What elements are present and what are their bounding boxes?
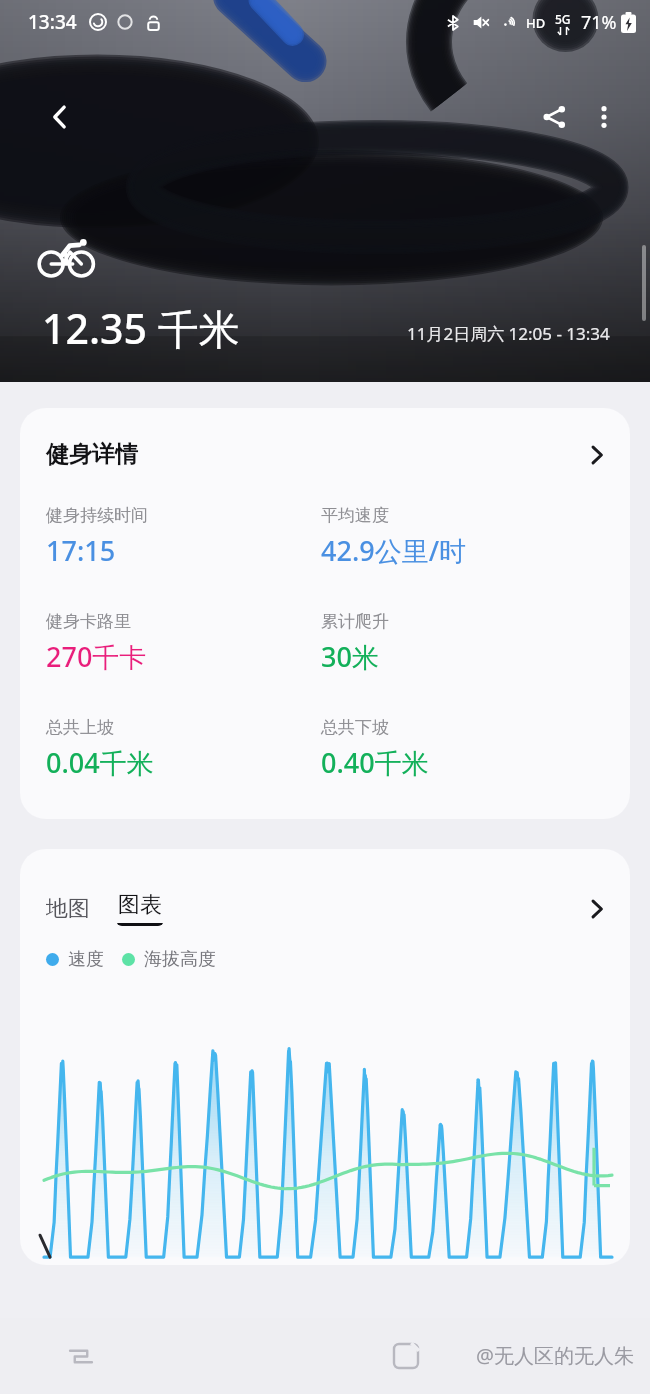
staticText: 健身持续时间 xyxy=(46,505,148,526)
staticText: 42.9公里/时 xyxy=(321,532,467,569)
staticText: 速度 xyxy=(68,948,104,971)
staticText: 总共上坡 xyxy=(46,717,114,738)
staticText: 17:15 xyxy=(46,532,116,569)
staticText: 健身详情 xyxy=(46,440,138,469)
staticText: @无人区的无人朱 xyxy=(476,1342,634,1369)
button[interactable]: Share xyxy=(530,93,578,141)
button[interactable]: Recents xyxy=(0,1318,162,1394)
staticText: 总共下坡 xyxy=(321,717,389,738)
staticText: 0.04千米 xyxy=(46,744,154,781)
button[interactable]: Back xyxy=(36,93,84,141)
button[interactable]: 地图 xyxy=(46,895,90,923)
staticText: 0.40千米 xyxy=(321,744,429,781)
staticText: HD xyxy=(526,14,546,32)
staticText: 11月2日周六 12:05 - 13:34 xyxy=(407,322,610,345)
button[interactable]: 健身详情 xyxy=(20,408,630,819)
staticText: 30米 xyxy=(321,638,379,675)
staticText: 图表 xyxy=(118,891,162,919)
staticText: 健身卡路里 xyxy=(46,611,131,632)
button[interactable]: Back xyxy=(324,1318,487,1394)
staticText: 13:34 xyxy=(28,9,77,35)
staticText: 5G xyxy=(555,11,571,27)
staticText: 累计爬升 xyxy=(321,611,389,632)
button[interactable]: More options xyxy=(580,93,628,141)
staticText: 12.35 千米 xyxy=(42,300,240,356)
button[interactable]: 图表 xyxy=(116,891,164,926)
staticText: 71% xyxy=(581,10,617,35)
staticText: 270千卡 xyxy=(46,638,147,675)
staticText: 地图 xyxy=(46,895,90,923)
button[interactable]: Open chart xyxy=(586,898,608,920)
staticText: 海拔高度 xyxy=(144,948,216,971)
staticText: 平均速度 xyxy=(321,505,389,526)
